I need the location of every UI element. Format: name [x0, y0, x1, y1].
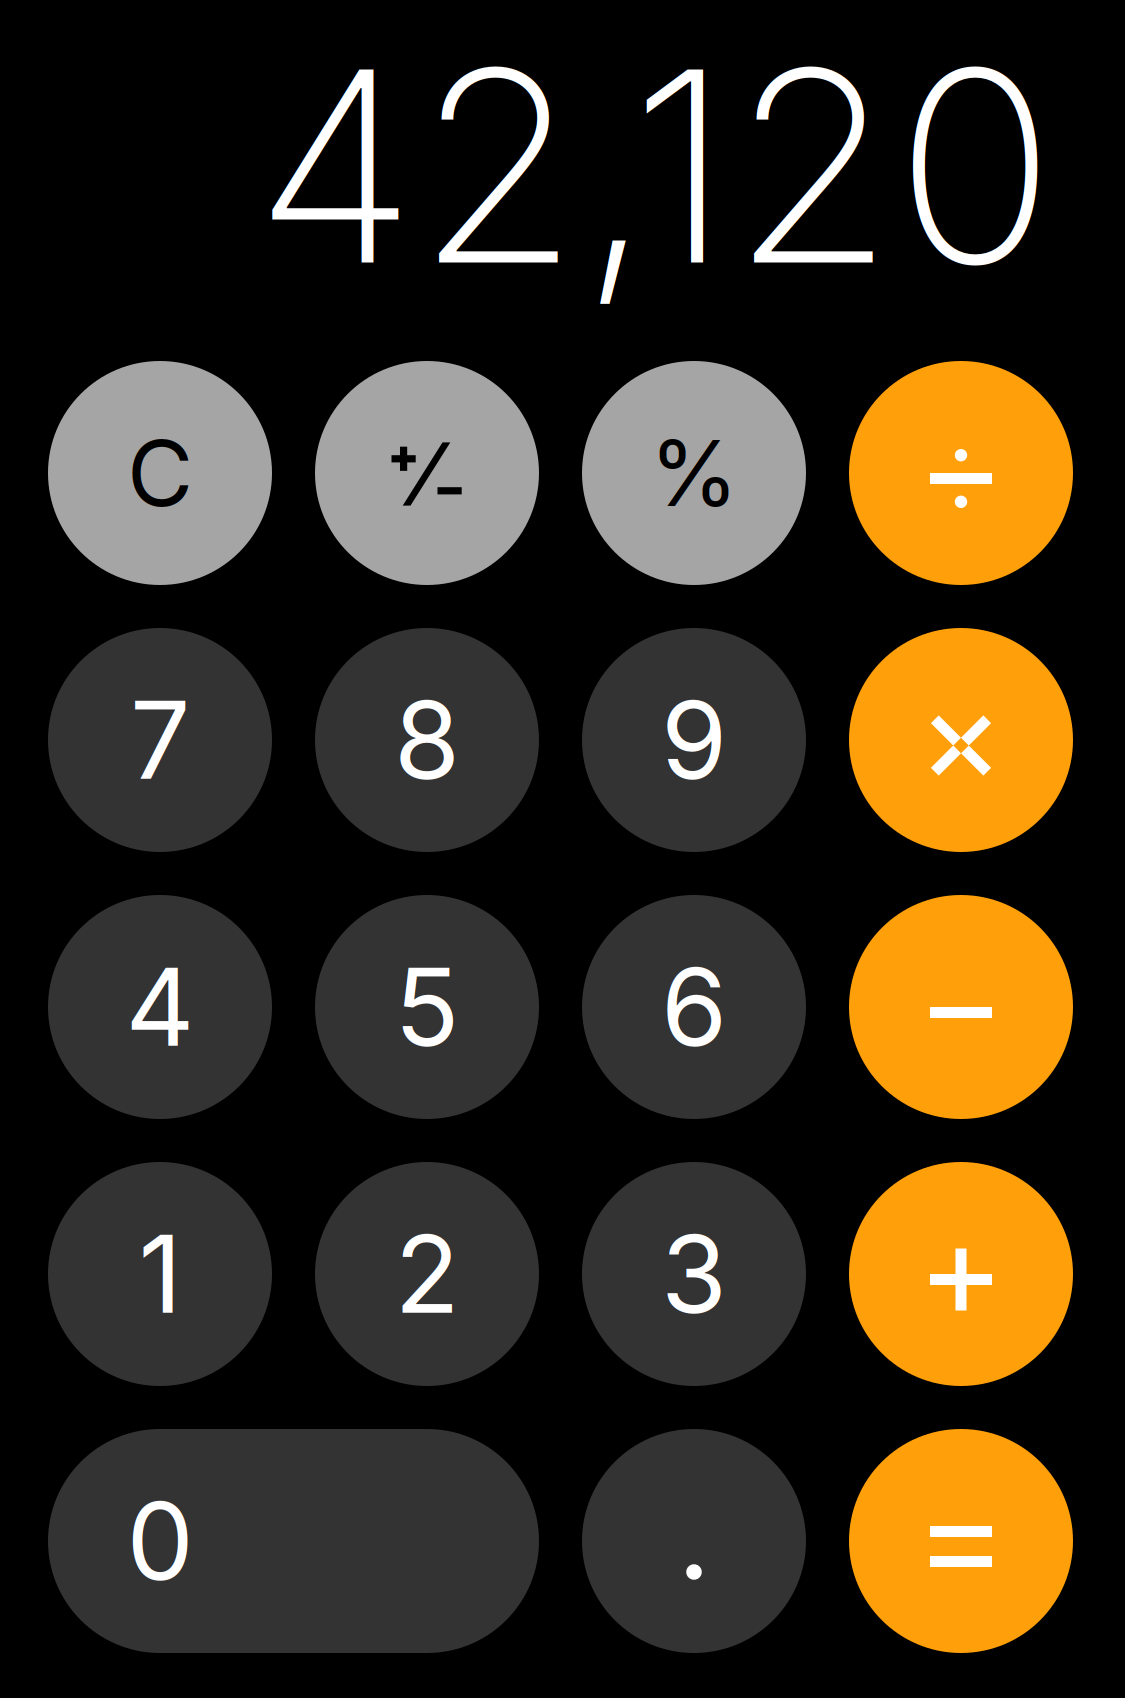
button[interactable]: 3: [582, 1162, 806, 1386]
button[interactable]: 0: [48, 1429, 539, 1653]
staticText: 1: [138, 1209, 181, 1339]
staticText: 3: [661, 1209, 727, 1339]
button[interactable]: 5: [315, 895, 539, 1119]
staticText: 8: [394, 675, 460, 805]
staticText: 5: [394, 942, 459, 1072]
button[interactable]: Decimal point: [582, 1429, 806, 1653]
staticText: 6: [661, 942, 727, 1072]
button[interactable]: Add: [849, 1162, 1073, 1386]
staticText: %: [649, 418, 738, 528]
staticText: C: [127, 418, 193, 528]
button[interactable]: 4: [48, 895, 272, 1119]
button[interactable]: Multiply: [849, 628, 1073, 852]
button[interactable]: C: [48, 361, 272, 585]
staticText: 0: [126, 1476, 193, 1606]
staticText: 4: [125, 942, 194, 1072]
staticText: 2: [394, 1209, 459, 1339]
button[interactable]: %: [582, 361, 806, 585]
staticText: 42,120: [254, 5, 1055, 326]
button[interactable]: 8: [315, 628, 539, 852]
button[interactable]: 6: [582, 895, 806, 1119]
button[interactable]: 9: [582, 628, 806, 852]
button[interactable]: 1: [48, 1162, 272, 1386]
staticText: 9: [661, 675, 727, 805]
button[interactable]: Subtract: [849, 895, 1073, 1119]
button[interactable]: Toggle sign: [315, 361, 539, 585]
staticText: 7: [130, 675, 190, 805]
button[interactable]: Divide: [849, 361, 1073, 585]
button[interactable]: 2: [315, 1162, 539, 1386]
button[interactable]: Equals: [849, 1429, 1073, 1653]
button[interactable]: 7: [48, 628, 272, 852]
